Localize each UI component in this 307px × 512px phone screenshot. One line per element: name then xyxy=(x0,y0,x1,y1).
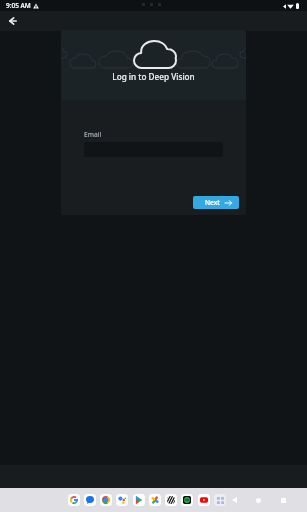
button[interactable] xyxy=(84,494,96,506)
staticText: 9:05 AM xyxy=(6,1,31,10)
staticText: Next xyxy=(205,198,220,207)
button[interactable] xyxy=(198,494,210,506)
button[interactable] xyxy=(100,494,112,506)
button[interactable] xyxy=(116,494,128,506)
button[interactable]: Back xyxy=(228,494,240,506)
staticText: Email xyxy=(84,130,102,139)
button[interactable]: Back xyxy=(4,12,22,30)
staticText: Log in to Deep Vision xyxy=(112,71,195,82)
button[interactable] xyxy=(68,494,80,506)
button[interactable] xyxy=(149,494,161,506)
button[interactable] xyxy=(133,494,145,506)
button[interactable] xyxy=(165,494,177,506)
button[interactable]: Next xyxy=(193,196,239,209)
button[interactable]: All apps xyxy=(214,494,226,506)
button[interactable]: Recent apps xyxy=(277,494,289,506)
button[interactable]: Home xyxy=(252,494,264,506)
button[interactable] xyxy=(181,494,193,506)
